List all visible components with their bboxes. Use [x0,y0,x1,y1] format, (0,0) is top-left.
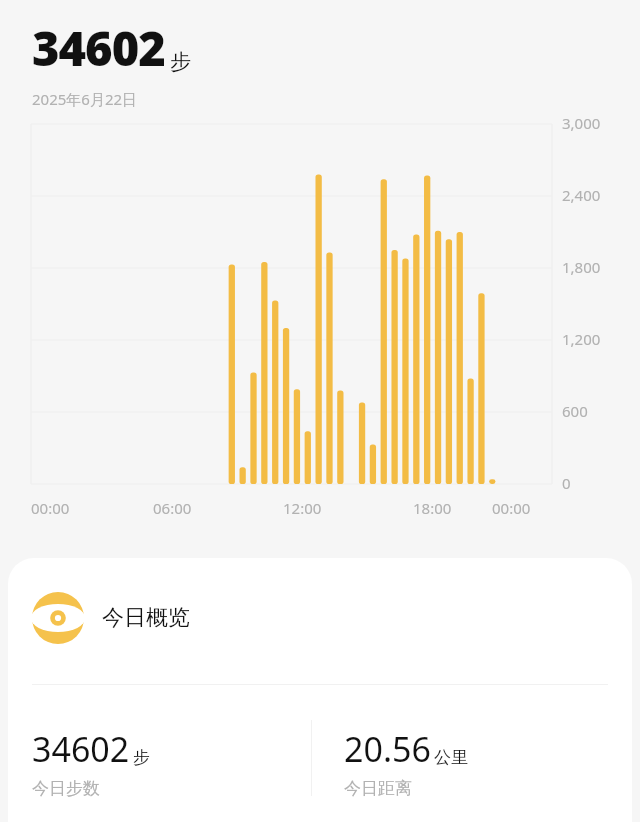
staticText: 1,200 [562,329,601,349]
staticText: 12:00 [283,498,322,518]
staticText: 34602 [32,16,165,80]
button[interactable]: 20.56 [344,726,468,799]
staticText: 公里 [434,747,468,768]
staticText: 2025年6月22日 [32,89,138,109]
staticText: 06:00 [153,498,192,518]
button[interactable]: 34602 [32,726,150,799]
staticText: 3,000 [562,113,601,133]
staticText: 20.56 [344,726,431,772]
staticText: 0 [562,473,571,493]
staticText: 00:00 [31,498,70,518]
staticText: 34602 [32,726,130,772]
staticText: 今日步数 [32,778,100,799]
staticText: 今日距离 [344,778,412,799]
staticText: 18:00 [413,498,452,518]
staticText: 步 [133,747,150,768]
other: 今日概览 [32,592,84,644]
staticText: 步 [170,49,191,75]
staticText: 1,800 [562,257,601,277]
button[interactable]: 今日概览 [8,558,632,822]
staticText: 今日概览 [102,604,190,632]
staticText: 2,400 [562,185,601,205]
staticText: 00:00 [492,498,531,518]
staticText: 600 [562,401,588,421]
